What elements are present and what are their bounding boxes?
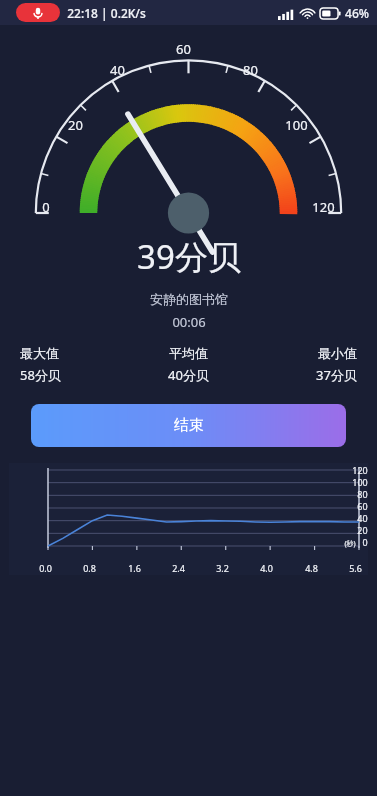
staticText: 5.6	[349, 562, 362, 574]
staticText: 平均值	[169, 345, 208, 361]
staticText: 80	[357, 488, 368, 500]
staticText: 60	[176, 40, 191, 58]
staticText: 最大值	[20, 345, 59, 361]
staticText: 安静的图书馆	[150, 291, 228, 307]
staticText: 1.6	[128, 562, 141, 574]
staticText: 4.8	[305, 562, 318, 574]
staticText: 40	[110, 61, 125, 79]
staticText: 4.0	[260, 562, 273, 574]
staticText: 0.0	[39, 562, 52, 574]
staticText: 58分贝	[20, 366, 61, 384]
staticText: 40分贝	[168, 366, 209, 384]
staticText: 39分贝	[137, 234, 241, 279]
staticText: 2.4	[172, 562, 185, 574]
staticText: 46%	[345, 5, 369, 21]
staticText: 0	[42, 198, 50, 216]
staticText: (秒)	[344, 539, 356, 549]
staticText: 60	[357, 500, 368, 512]
staticText: 100	[285, 116, 308, 134]
staticText: 20	[357, 524, 368, 536]
staticText: 0.8	[83, 562, 96, 574]
staticText: 结束	[174, 416, 204, 435]
staticText: 3.2	[216, 562, 229, 574]
staticText: 120	[312, 198, 335, 216]
staticText: 0	[362, 536, 368, 546]
staticText: 120	[352, 464, 368, 476]
staticText: 00:06	[172, 313, 206, 331]
staticText: 20	[68, 116, 83, 134]
staticText: 80	[243, 61, 258, 79]
staticText: 100	[352, 476, 368, 488]
staticText: 最小值	[318, 345, 357, 361]
staticText: 37分贝	[316, 366, 357, 384]
staticText: 40	[357, 512, 368, 524]
staticText: 22:18 | 0.2K/s	[67, 5, 146, 21]
button[interactable]: 结束	[31, 404, 346, 447]
